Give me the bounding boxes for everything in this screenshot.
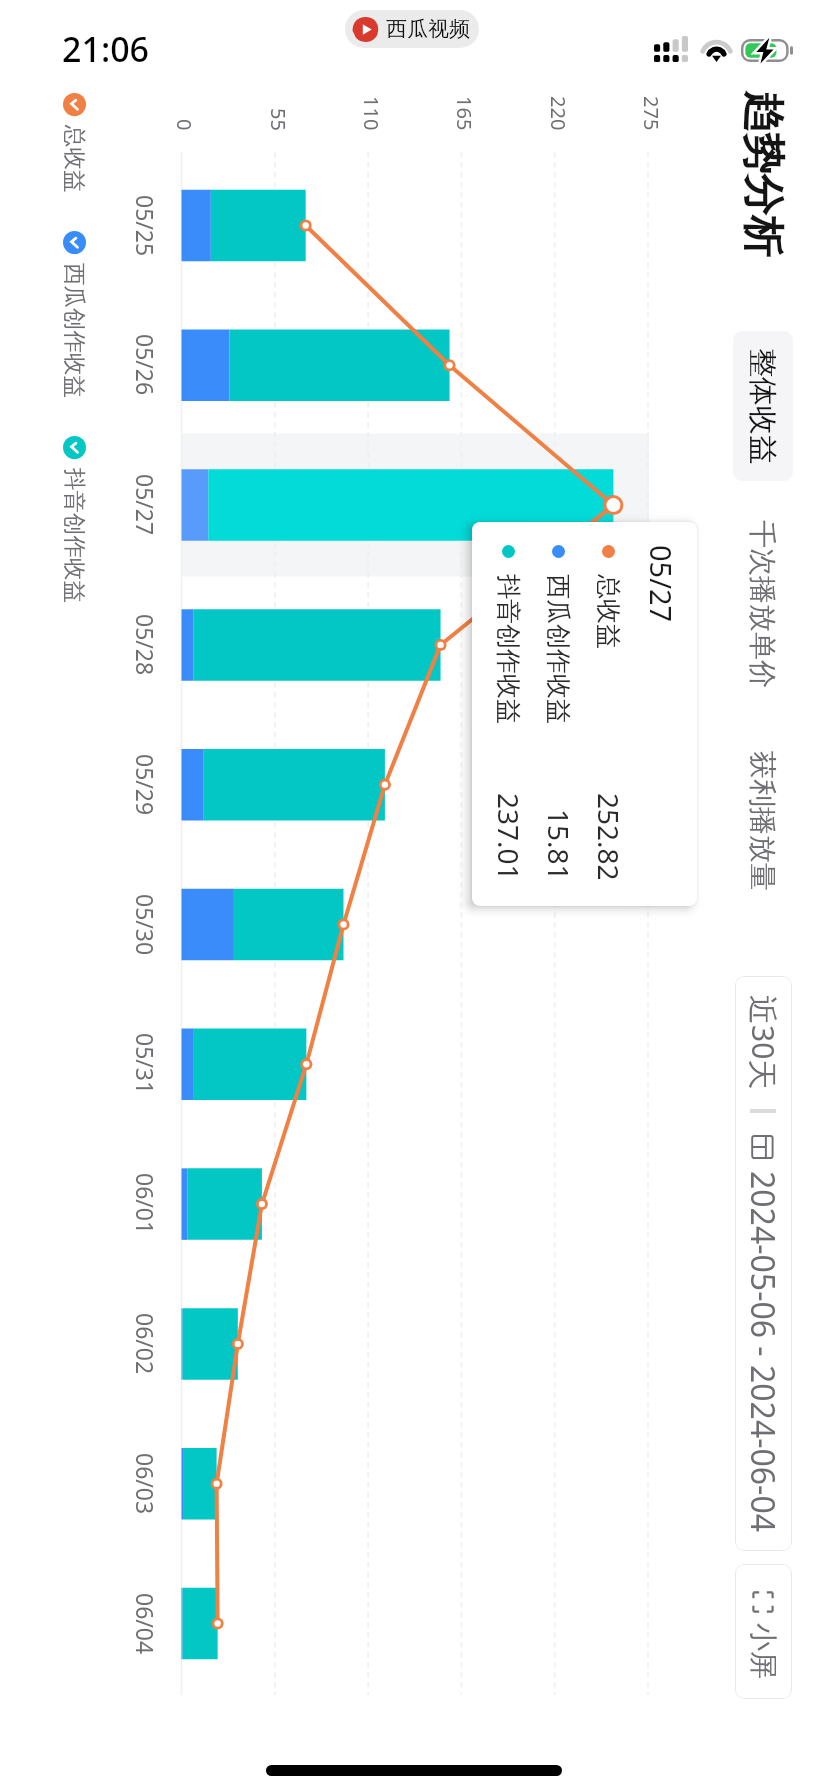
staticText: 05/27 [130, 474, 161, 536]
button[interactable]: 05/30 [181, 855, 649, 995]
staticText: 抖音创作收益 [61, 468, 89, 603]
staticText: 趋势分析 [737, 92, 789, 258]
button[interactable]: Small screen [735, 1564, 792, 1699]
staticText: 2024-05-06 - 2024-06-04 [741, 1171, 785, 1533]
staticText: 千次播放单价 [745, 520, 780, 688]
button[interactable]: 获利播放量 [733, 734, 793, 908]
button[interactable]: 06/01 [181, 1134, 649, 1274]
button[interactable]: 近30天 [735, 976, 792, 1551]
staticText: 55 [265, 108, 292, 131]
staticText: 220 [545, 96, 572, 131]
staticText: 06/03 [130, 1453, 161, 1515]
staticText: 05/27 [642, 545, 681, 623]
staticText: 0 [171, 119, 198, 131]
other: Small screen [751, 1590, 775, 1614]
staticText: 西瓜创作收益 [543, 574, 574, 724]
staticText: 237.01 [490, 793, 528, 881]
button[interactable]: 05/27 [181, 435, 649, 575]
staticText: 获利播放量 [745, 751, 780, 891]
staticText: 05/30 [130, 894, 161, 956]
staticText: 21:06 [62, 26, 150, 72]
button[interactable]: 05/25 [181, 156, 649, 296]
staticText: 抖音创作收益 [493, 574, 524, 724]
button[interactable]: 西瓜创作收益 [61, 231, 89, 398]
staticText: 整体收益 [744, 348, 781, 464]
staticText: 西瓜创作收益 [61, 263, 89, 398]
other: Calendar [751, 1135, 775, 1159]
staticText: 165 [451, 96, 478, 131]
button[interactable]: 06/03 [181, 1414, 649, 1554]
staticText: 06/04 [130, 1593, 161, 1655]
staticText: 110 [358, 96, 385, 131]
button[interactable]: 整体收益 [733, 331, 793, 481]
button[interactable]: 06/04 [181, 1554, 649, 1694]
staticText: 小屏 [746, 1623, 781, 1679]
staticText: 06/01 [130, 1173, 161, 1235]
staticText: 05/26 [130, 334, 161, 396]
staticText: 252.82 [590, 793, 628, 881]
staticText: 总收益 [61, 125, 89, 193]
button[interactable]: 05/29 [181, 715, 649, 855]
staticText: 05/25 [130, 195, 161, 257]
button[interactable]: 05/28 [181, 575, 649, 715]
button[interactable]: 总收益 [61, 93, 89, 193]
button[interactable]: 05/31 [181, 994, 649, 1134]
staticText: 06/02 [130, 1313, 161, 1375]
staticText: 275 [638, 96, 665, 131]
button[interactable]: 西瓜视频 [345, 10, 479, 48]
button[interactable]: 抖音创作收益 [61, 436, 89, 603]
staticText: 近30天 [743, 995, 784, 1090]
button[interactable]: 06/02 [181, 1274, 649, 1414]
staticText: 05/28 [130, 614, 161, 676]
staticText: 西瓜视频 [386, 16, 470, 42]
button[interactable]: 千次播放单价 [733, 503, 793, 705]
staticText: 15.81 [540, 809, 578, 881]
staticText: 总收益 [593, 574, 624, 649]
button[interactable]: 05/26 [181, 295, 649, 435]
staticText: 05/29 [130, 754, 161, 816]
staticText: 05/31 [130, 1033, 161, 1095]
